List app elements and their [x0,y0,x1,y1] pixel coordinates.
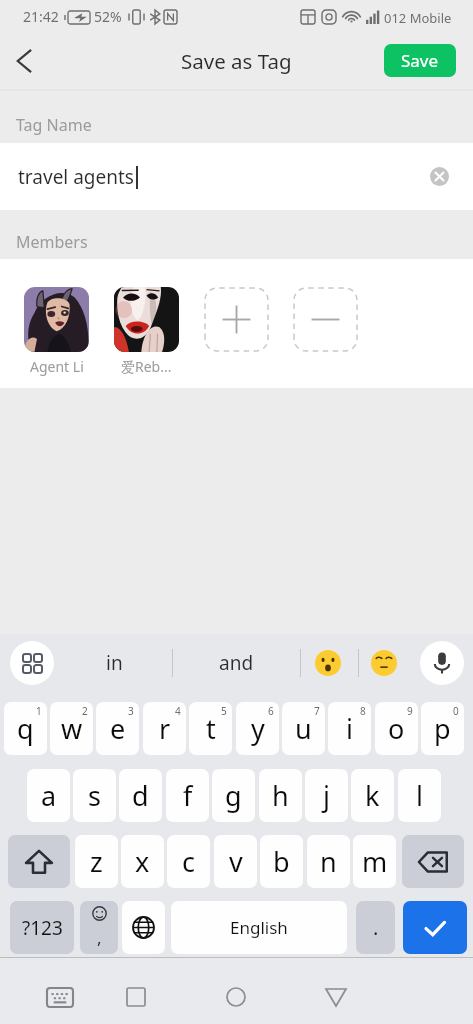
button[interactable]: Agent Li [24,287,89,376]
button[interactable]: i [328,702,371,755]
button[interactable]: Home [216,977,256,1017]
button[interactable]: v [214,835,257,888]
staticText: o [388,710,405,747]
button[interactable]: t [189,702,232,755]
button[interactable]: Change language [122,901,165,954]
staticText: y [251,710,265,747]
button[interactable]: x [121,835,164,888]
button[interactable]: Add member [204,287,269,352]
staticText: u [295,710,312,747]
staticText: in [106,650,123,676]
staticText: , [97,926,102,949]
button[interactable]: l [398,769,441,822]
button[interactable]: d [119,769,162,822]
button[interactable]: h [259,769,302,822]
staticText: 1 [36,704,42,718]
button[interactable]: Back [316,977,356,1017]
button[interactable]: j [305,769,348,822]
staticText: 012 Mobile [384,9,452,27]
button[interactable]: Relieved emoji [371,650,397,676]
staticText: k [365,777,380,814]
staticText: 7 [314,704,320,718]
staticText: 0 [453,704,459,718]
staticText: 9 [407,704,413,718]
staticText: Tag Name [16,114,92,136]
staticText: h [272,777,289,814]
staticText: v [229,843,243,880]
staticText: Save [401,49,439,72]
button[interactable]: 爱Reb... [114,287,179,376]
staticText: r [159,710,171,747]
button[interactable]: y [236,702,279,755]
button[interactable]: f [166,769,209,822]
button[interactable]: . [356,901,395,954]
button[interactable]: e [96,702,139,755]
staticText: 4 [175,704,181,718]
staticText: f [183,777,193,814]
staticText: English [230,916,288,939]
button[interactable]: ?123 [10,901,74,954]
button[interactable]: Recent apps [116,977,156,1017]
button[interactable]: Hide keyboard [40,977,80,1017]
staticText: 21:42 [23,7,59,26]
button[interactable]: b [260,835,303,888]
staticText: c [182,843,195,880]
staticText: a [41,777,57,814]
button[interactable]: Remove member [293,287,358,352]
button[interactable]: w [50,702,93,755]
staticText: 爱Reb... [121,357,172,376]
button[interactable]: Backspace [402,835,464,888]
staticText: x [135,843,150,880]
staticText: 5 [221,704,227,718]
button[interactable]: k [351,769,394,822]
staticText: 3 [128,704,134,718]
button[interactable]: q [4,702,47,755]
staticText: and [219,650,254,676]
button[interactable]: Save [384,44,456,77]
staticText: g [225,777,242,814]
staticText: . [373,914,379,941]
staticText: Members [16,231,88,253]
button[interactable]: n [307,835,350,888]
staticText: i [346,710,353,747]
button[interactable]: m [353,835,396,888]
staticText: 8 [360,704,366,718]
button[interactable]: p [421,702,464,755]
button[interactable]: s [73,769,116,822]
button[interactable]: Emoji and comma [80,901,118,954]
staticText: b [273,843,290,880]
button[interactable]: c [167,835,210,888]
staticText: m [362,843,388,880]
staticText: q [17,710,34,747]
button[interactable]: o [375,702,418,755]
staticText: j [323,777,330,814]
staticText: s [88,777,101,814]
staticText: p [434,710,451,747]
button[interactable]: Surprised emoji [315,650,341,676]
staticText: 2 [82,704,88,718]
button[interactable]: Clear text [430,167,449,186]
button[interactable]: Back [4,41,44,81]
staticText: 52% [94,7,122,26]
button[interactable]: Done [403,901,467,954]
button[interactable]: g [212,769,255,822]
staticText: z [90,843,103,880]
button[interactable]: r [143,702,186,755]
button[interactable]: u [282,702,325,755]
staticText: d [132,777,149,814]
staticText: n [320,843,337,880]
staticText: Agent Li [30,357,84,376]
staticText: ?123 [22,915,63,941]
button[interactable]: in [75,641,153,685]
staticText: travel agents [18,164,134,190]
button[interactable]: English [171,901,347,954]
button[interactable]: a [27,769,70,822]
staticText: w [61,710,83,747]
staticText: 6 [268,704,274,718]
button[interactable]: Toolbox [10,641,54,685]
button[interactable]: Shift [8,835,70,888]
staticText: t [206,710,216,747]
button[interactable]: Voice input [420,641,464,685]
button[interactable]: z [75,835,118,888]
button[interactable]: and [197,641,275,685]
